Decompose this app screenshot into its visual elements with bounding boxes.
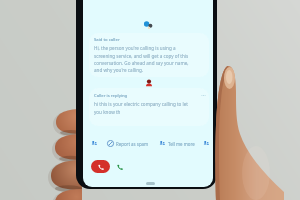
button[interactable]: Answer call (115, 162, 125, 172)
button[interactable]: Caller is replying (89, 88, 209, 126)
staticText: hi this is your electric company calling… (94, 101, 192, 115)
button[interactable]: Transcript (89, 138, 99, 148)
button[interactable]: Tell me more (158, 140, 196, 147)
staticText: Report as spam (116, 141, 149, 147)
staticText: Caller is replying (94, 93, 128, 99)
button[interactable]: Said to caller (89, 33, 209, 77)
button[interactable]: More actions (201, 138, 211, 148)
staticText: Tell me more (168, 141, 195, 147)
button[interactable]: Report as spam (106, 140, 150, 147)
staticText: Said to caller (94, 37, 120, 43)
button[interactable]: End call (91, 160, 110, 173)
staticText: Hi, the person you're calling is using a… (94, 45, 193, 73)
